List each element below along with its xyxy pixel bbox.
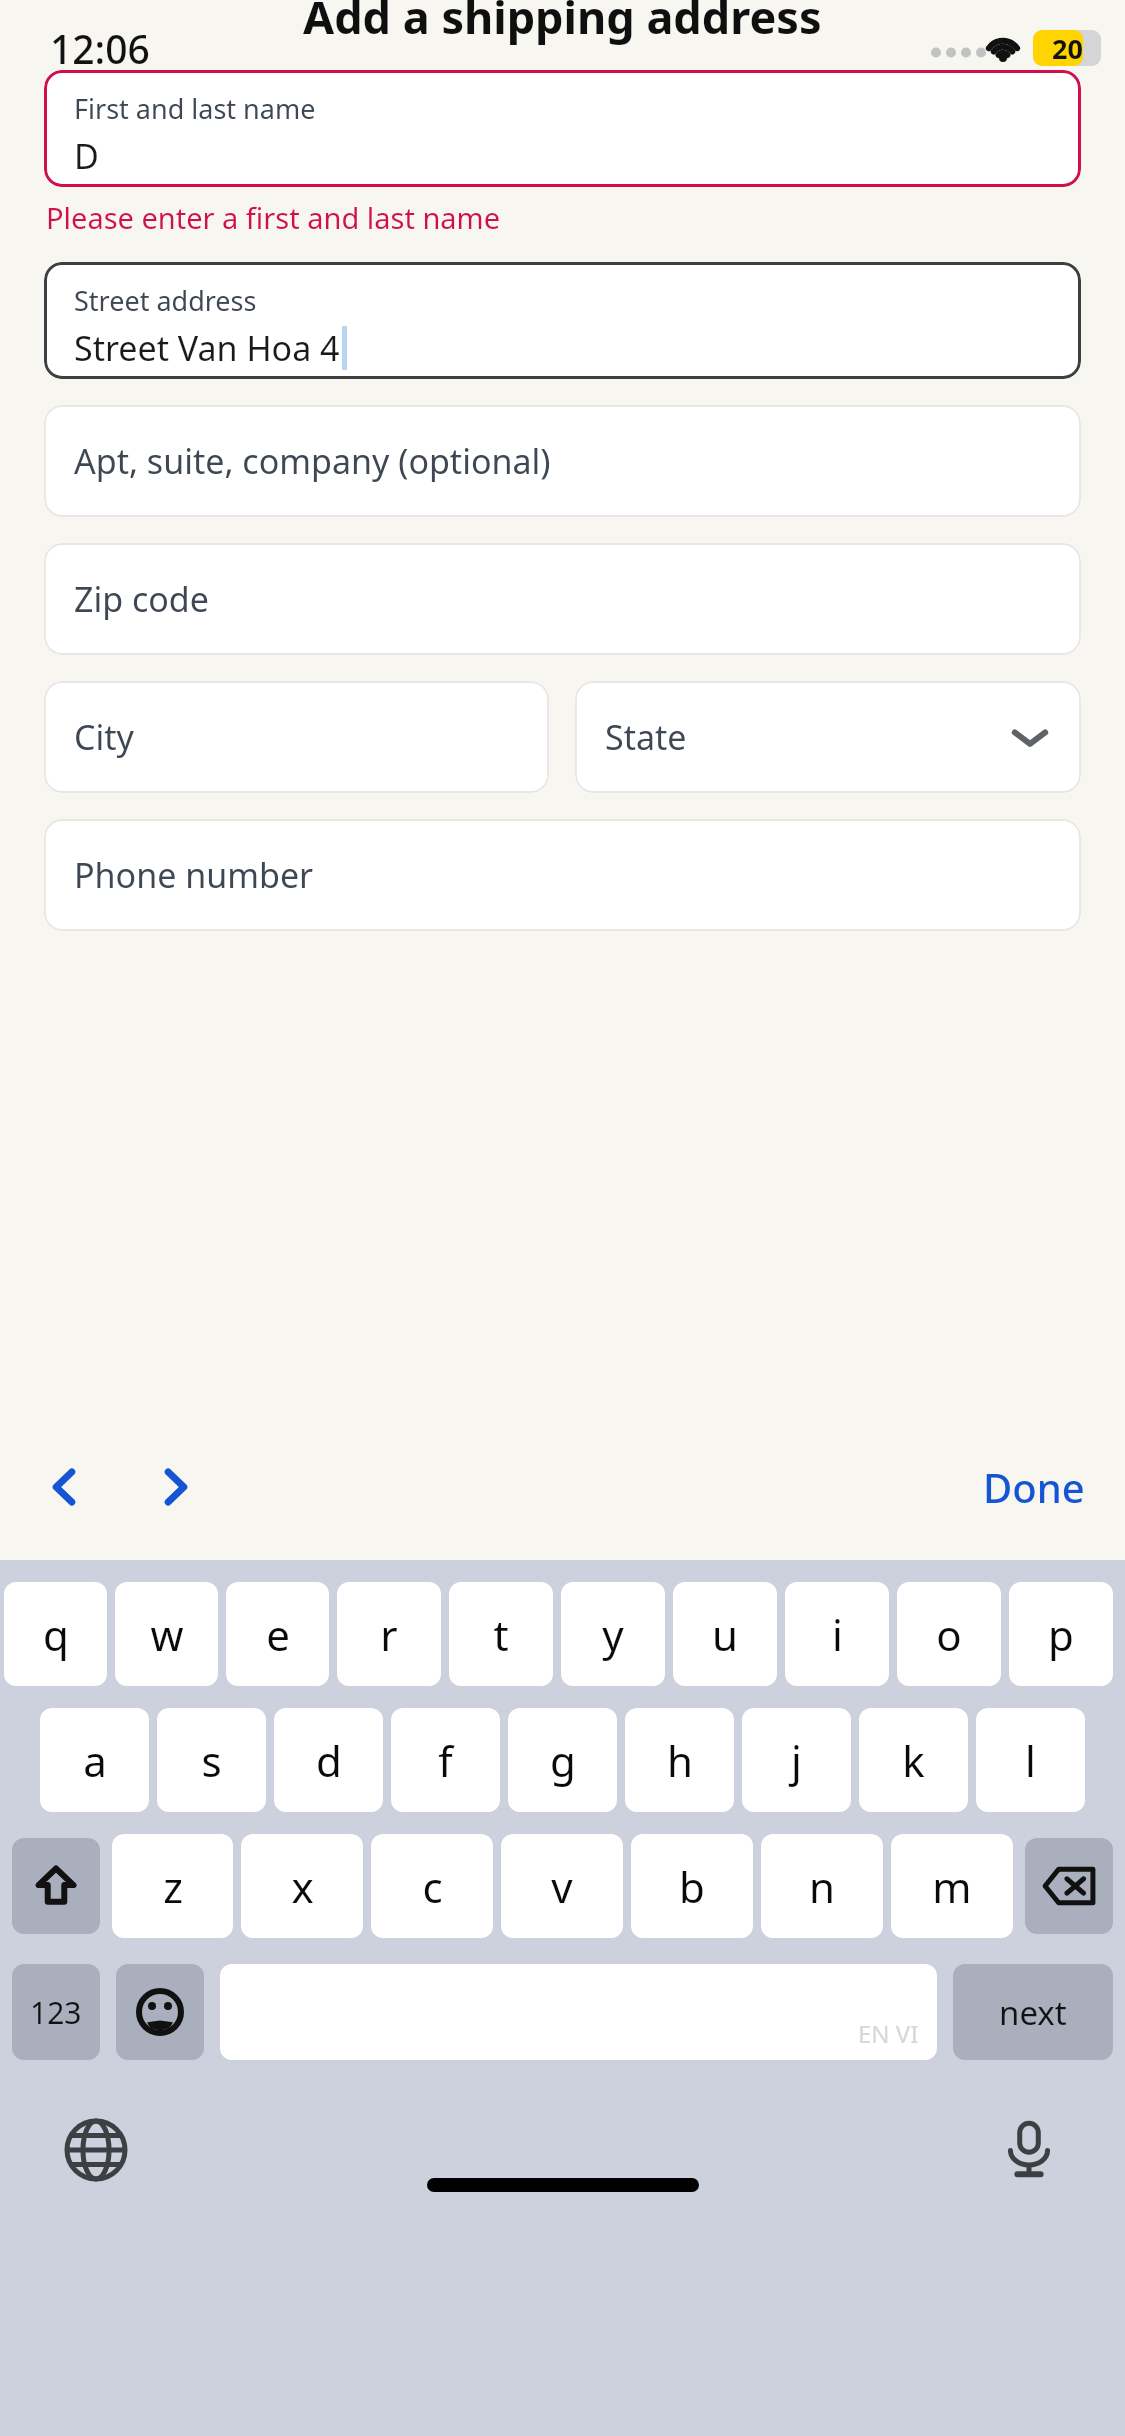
staticText: m [932, 1858, 972, 1915]
button[interactable]: a [40, 1708, 149, 1812]
button[interactable]: State [575, 681, 1081, 793]
staticText: r [380, 1606, 398, 1663]
staticText: n [809, 1858, 835, 1915]
staticText: l [1025, 1732, 1036, 1789]
staticText: Street Van Hoa 4 [74, 325, 340, 371]
button[interactable]: q [4, 1582, 107, 1686]
staticText: 12:06 [50, 22, 150, 75]
button[interactable]: e [226, 1582, 329, 1686]
staticText: City [74, 714, 134, 760]
button[interactable]: c [371, 1834, 493, 1938]
button[interactable]: Voice input [991, 2112, 1067, 2188]
staticText: Apt, suite, company (optional) [74, 438, 551, 484]
button[interactable]: First and last name [44, 70, 1081, 187]
button[interactable]: v [501, 1834, 623, 1938]
button[interactable]: d [274, 1708, 383, 1812]
staticText: o [936, 1606, 962, 1663]
button[interactable]: Backspace [1025, 1838, 1113, 1934]
button[interactable]: p [1009, 1582, 1113, 1686]
button[interactable]: m [891, 1834, 1013, 1938]
button[interactable]: 123 [12, 1964, 100, 2060]
button[interactable]: Next field [138, 1450, 212, 1524]
staticText: e [266, 1606, 290, 1663]
button[interactable]: Done [983, 1460, 1085, 1514]
staticText: v [551, 1858, 573, 1915]
staticText: y [602, 1606, 624, 1663]
button[interactable]: Previous field [28, 1450, 102, 1524]
button[interactable]: h [625, 1708, 734, 1812]
button[interactable]: z [112, 1834, 233, 1938]
staticText: Done [983, 1460, 1085, 1514]
staticText: Street address [74, 282, 257, 319]
button[interactable]: Space [220, 1964, 937, 2060]
button[interactable]: g [508, 1708, 617, 1812]
button[interactable]: y [561, 1582, 665, 1686]
button[interactable]: City [44, 681, 549, 793]
button[interactable]: Apt, suite, company (optional) [44, 405, 1081, 517]
staticText: q [43, 1606, 69, 1663]
staticText: g [550, 1732, 576, 1789]
staticText: EN VI [858, 2017, 919, 2050]
staticText: f [438, 1732, 453, 1789]
button[interactable]: f [391, 1708, 500, 1812]
button[interactable]: Zip code [44, 543, 1081, 655]
button[interactable]: l [976, 1708, 1085, 1812]
button[interactable]: t [449, 1582, 553, 1686]
staticText: z [163, 1858, 183, 1915]
staticText: 123 [30, 1992, 82, 2033]
staticText: t [493, 1606, 509, 1663]
button[interactable]: i [785, 1582, 889, 1686]
staticText: a [83, 1732, 107, 1789]
staticText: p [1048, 1606, 1074, 1663]
button[interactable]: Street address [44, 262, 1081, 379]
button[interactable]: r [337, 1582, 441, 1686]
staticText: 20 [1052, 30, 1083, 66]
staticText: next [999, 1990, 1067, 2035]
staticText: i [832, 1606, 843, 1663]
staticText: w [150, 1606, 184, 1663]
staticText: Please enter a first and last name [46, 198, 501, 237]
staticText: Zip code [74, 576, 209, 622]
button[interactable]: s [157, 1708, 266, 1812]
button[interactable]: x [241, 1834, 363, 1938]
button[interactable]: o [897, 1582, 1001, 1686]
button[interactable]: w [115, 1582, 218, 1686]
staticText: Add a shipping address [303, 0, 822, 47]
button[interactable]: Emoji [116, 1964, 204, 2060]
staticText: State [605, 714, 687, 760]
staticText: Phone number [74, 852, 314, 898]
staticText: First and last name [74, 90, 316, 127]
button[interactable]: n [761, 1834, 883, 1938]
button[interactable]: u [673, 1582, 777, 1686]
staticText: k [902, 1732, 925, 1789]
other: Choose state [1011, 718, 1049, 756]
staticText: c [422, 1858, 443, 1915]
button[interactable]: j [742, 1708, 851, 1812]
staticText: s [201, 1732, 222, 1789]
button[interactable]: Shift [12, 1838, 100, 1934]
staticText: D [74, 133, 99, 179]
staticText: x [291, 1858, 314, 1915]
staticText: h [667, 1732, 693, 1789]
staticText: d [316, 1732, 342, 1789]
button[interactable]: next [953, 1964, 1113, 2060]
button[interactable]: k [859, 1708, 968, 1812]
staticText: j [791, 1732, 802, 1789]
button[interactable]: b [631, 1834, 753, 1938]
button[interactable]: Change language [58, 2112, 134, 2188]
staticText: b [679, 1858, 705, 1915]
staticText: u [712, 1606, 738, 1663]
button[interactable]: Phone number [44, 819, 1081, 931]
